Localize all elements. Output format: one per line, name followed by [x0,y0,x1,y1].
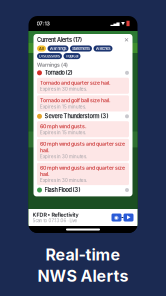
staticText: Expires in 30 minutes. [40,154,87,159]
staticText: ▼ [121,21,125,26]
staticText: ▶ [126,215,130,220]
button[interactable]: Tropical [63,53,80,59]
staticText: Tornado (2) [44,69,72,76]
button[interactable]: Statements [70,45,92,52]
button[interactable]: All [37,45,46,52]
staticText: ▉ [126,21,129,26]
staticText: 60 mph wind gusts. [40,123,87,129]
staticText: Expires in 15 minutes. [40,104,86,109]
staticText: Warnings (4) [37,62,68,68]
staticText: Tropical [65,54,78,58]
staticText: Statements [72,46,90,51]
button[interactable]: Flash Flood (3) [37,187,129,193]
button[interactable]: Severe Thunderstorm (3) [37,113,129,120]
button[interactable]: Close [124,36,129,43]
button[interactable]: 60 mph wind gusts. [37,121,129,137]
button[interactable]: 60 mph wind gusts and quarter size hail. [37,139,129,161]
staticText: Warnings [49,46,66,51]
button[interactable]: Play [123,213,133,221]
button[interactable]: 60 mph wind gusts and quarter size hail. [37,163,129,185]
staticText: 60 mph wind gusts and quarter size hail. [40,141,125,153]
staticText: Discussions [39,54,60,58]
button[interactable]: Warnings [47,45,68,52]
staticText: NWS Alerts [37,266,128,286]
staticText: Flash Flood (3) [44,187,80,193]
staticText: KFDR • Reflectivity [32,212,78,218]
staticText: ◉ [114,214,119,221]
staticText: Severe Thunderstorm (3) [44,113,108,120]
staticText: Watches [95,46,110,51]
button[interactable]: Snapshot [111,213,121,221]
staticText: Expires in 30 minutes. [40,178,87,183]
staticText: Current Alerts (17) [37,37,82,43]
button[interactable]: Watches [93,45,112,52]
staticText: 60 mph wind gusts and quarter size hail. [40,165,125,177]
staticText: Real-time [45,245,120,264]
staticText: Tornado and golf ball size hail. [40,97,111,104]
staticText: 07:13 [36,20,49,27]
staticText: All [39,46,44,51]
button[interactable]: Tornado and quarter size hail. [37,78,129,94]
button[interactable]: Discussions [37,53,62,59]
staticText: Expires in 30 minutes. [40,86,87,92]
staticText: Expires in 15 minutes. [40,130,86,135]
staticText: Tornado and quarter size hail. [40,80,111,86]
staticText: Scan to 07:13:06 · Live [32,218,76,223]
button[interactable]: Tornado and golf ball size hail. [37,95,129,111]
staticText: ✕ [124,36,129,43]
button[interactable]: Tornado (2) [37,69,129,76]
staticText: ▂▄▆ [110,21,119,26]
